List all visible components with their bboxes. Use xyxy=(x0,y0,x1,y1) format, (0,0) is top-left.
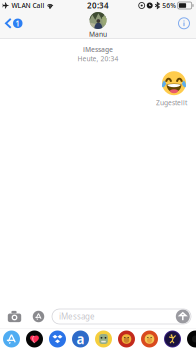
button[interactable]: App xyxy=(23,328,46,350)
button[interactable]: App xyxy=(0,328,23,350)
button[interactable]: App xyxy=(161,328,184,350)
button[interactable]: Camera xyxy=(5,306,24,327)
staticText: Zugestellt xyxy=(156,98,187,107)
button[interactable]: App xyxy=(184,328,196,350)
button[interactable]: App xyxy=(115,328,138,350)
button[interactable]: App xyxy=(69,328,92,350)
button[interactable]: Back xyxy=(0,13,29,34)
staticText: WLAN Call xyxy=(11,1,44,10)
button[interactable]: Details xyxy=(174,13,194,33)
staticText: Manu xyxy=(89,30,107,39)
button[interactable]: App Store xyxy=(30,306,47,327)
button[interactable]: App xyxy=(138,328,161,350)
staticText: Heute, 20:34 xyxy=(77,54,118,63)
staticText: iMessage xyxy=(59,311,95,322)
button[interactable]: App xyxy=(92,328,115,350)
staticText: 20:34 xyxy=(87,0,109,11)
staticText: 56% xyxy=(162,1,176,10)
staticText: iMessage xyxy=(83,45,113,54)
staticText: 1 xyxy=(15,18,20,29)
staticText: a xyxy=(76,330,84,348)
button[interactable]: App xyxy=(46,328,69,350)
button[interactable]: iMessage xyxy=(52,309,191,324)
